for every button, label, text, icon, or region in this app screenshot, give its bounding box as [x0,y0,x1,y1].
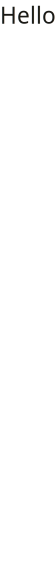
staticText: Hello [0,0,56,30]
